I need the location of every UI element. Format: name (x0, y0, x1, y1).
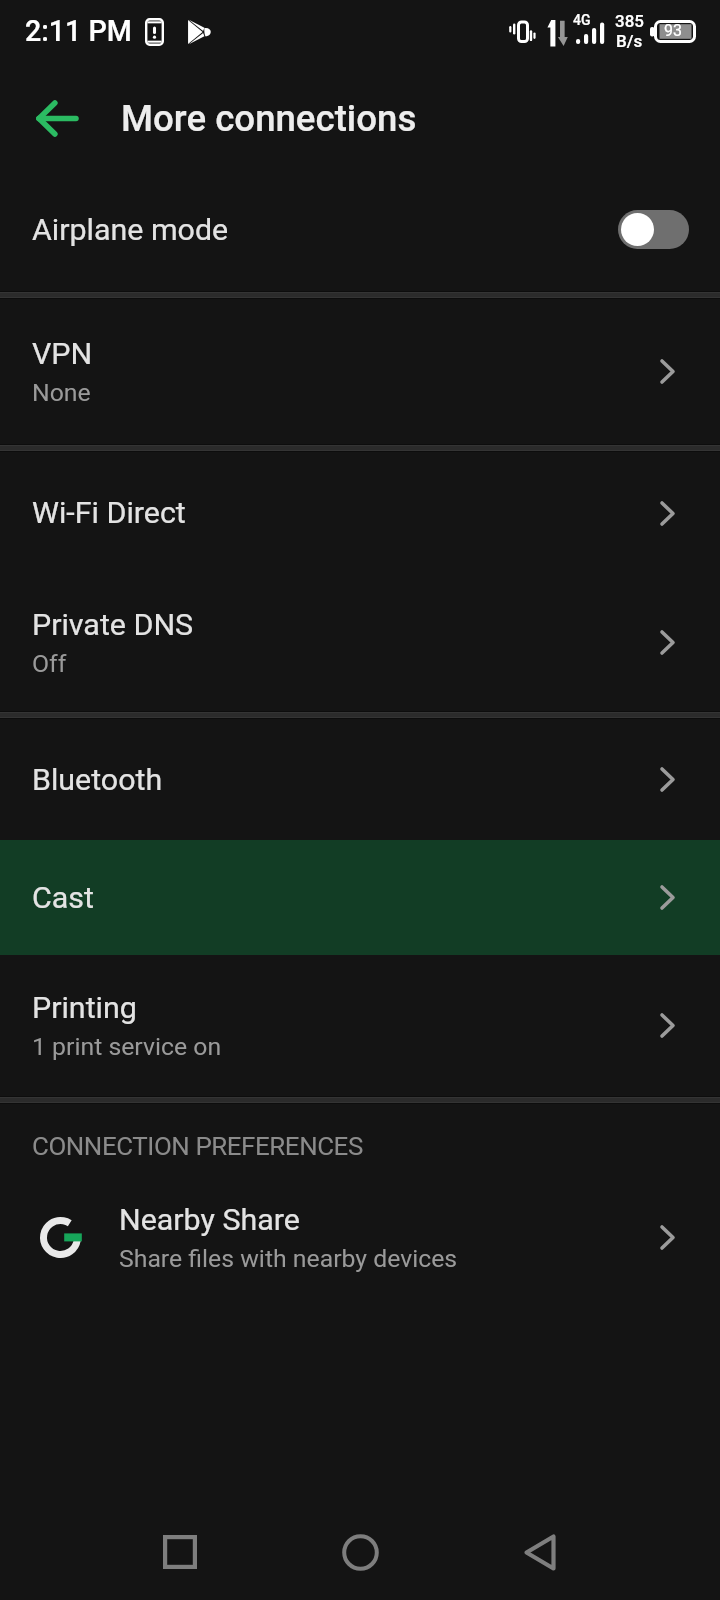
staticText: 2:11 PM (25, 14, 132, 48)
button[interactable]: Home (300, 1510, 420, 1594)
staticText: VPN (32, 336, 93, 372)
button[interactable]: Printing (0, 955, 720, 1096)
staticText: 1 print service on (32, 1032, 222, 1061)
button[interactable]: Airplane mode (0, 168, 720, 291)
button[interactable]: Navigate up (9, 68, 105, 168)
staticText: Nearby Share (119, 1202, 300, 1238)
staticText: 4G (573, 12, 591, 28)
staticText: Airplane mode (32, 212, 229, 248)
staticText: 385 (615, 11, 644, 31)
button[interactable]: Back (480, 1510, 600, 1594)
staticText: Private DNS (32, 607, 194, 643)
staticText: CONNECTION PREFERENCES (32, 1131, 363, 1161)
button[interactable]: Nearby Share (0, 1188, 720, 1290)
button[interactable]: Cast (0, 840, 720, 955)
staticText: 93 (664, 21, 682, 40)
staticText: Printing (32, 990, 137, 1026)
staticText: Share files with nearby devices (119, 1244, 458, 1273)
button[interactable]: Private DNS (0, 574, 720, 711)
button[interactable]: Wi-Fi Direct (0, 452, 720, 574)
staticText: Wi-Fi Direct (32, 495, 186, 531)
button[interactable]: Recent apps (120, 1510, 240, 1594)
staticText: B/s (616, 31, 643, 51)
button[interactable]: Airplane mode toggle (618, 210, 689, 249)
staticText: None (32, 378, 91, 407)
button[interactable]: VPN (0, 299, 720, 444)
button[interactable]: Bluetooth (0, 719, 720, 840)
staticText: Bluetooth (32, 762, 163, 798)
staticText: More connections (121, 97, 417, 140)
staticText: Cast (32, 880, 94, 916)
staticText: Off (32, 649, 67, 678)
